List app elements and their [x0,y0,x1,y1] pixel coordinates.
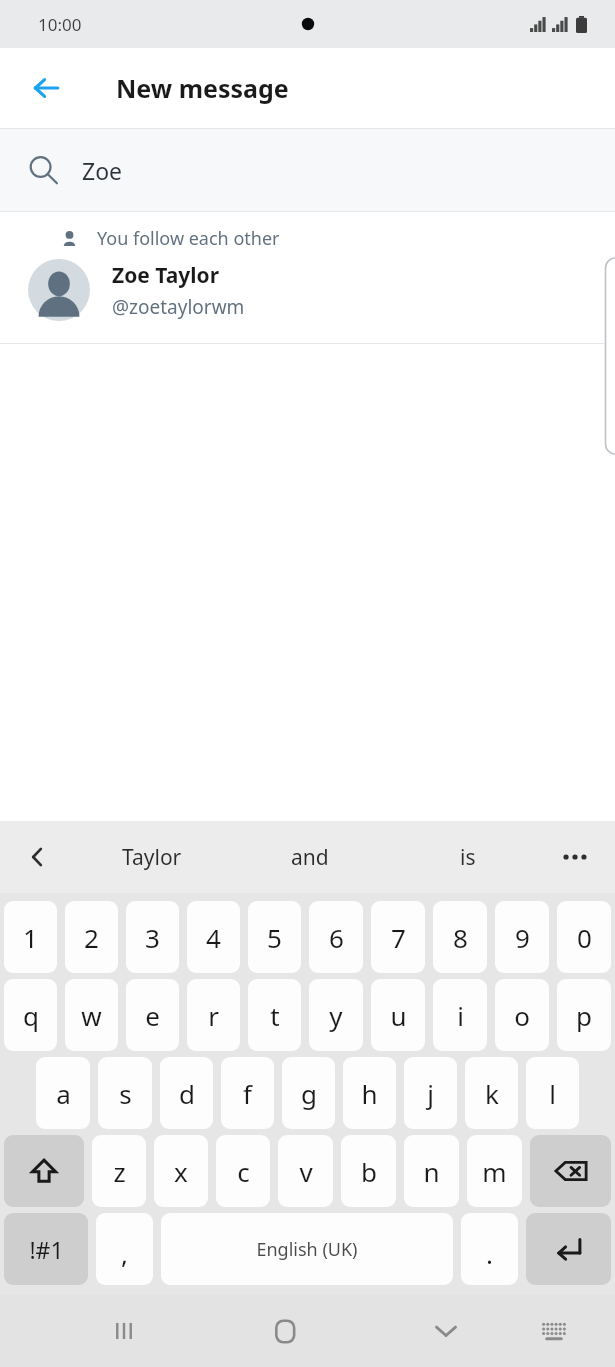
button[interactable]: 6 [309,901,363,973]
button[interactable]: a [36,1057,90,1129]
button[interactable]: 0 [557,901,611,973]
staticText: 7 [391,920,406,955]
staticText: New message [116,71,289,105]
staticText: . [486,1236,493,1271]
staticText: l [549,1076,556,1111]
staticText: z [113,1154,126,1189]
button[interactable]: g [282,1057,335,1129]
button[interactable]: 4 [187,901,240,973]
button[interactable]: i [433,979,487,1051]
staticText: s [119,1076,132,1111]
staticText: y [329,998,343,1033]
button[interactable]: English (UK) [161,1213,453,1285]
button[interactable]: t [248,979,301,1051]
staticText: is [460,843,476,872]
button[interactable]: c [216,1135,270,1207]
staticText: p [576,998,592,1033]
staticText: g [301,1076,317,1111]
button[interactable]: Taylor [72,821,231,893]
staticText: 10:00 [38,13,82,36]
button[interactable]: and [231,821,389,893]
button[interactable]: x [154,1135,208,1207]
button[interactable]: More options [551,833,599,881]
button[interactable]: !#1 [4,1213,88,1285]
button[interactable]: u [371,979,425,1051]
staticText: 6 [329,920,344,955]
button[interactable]: 1 [4,901,57,973]
staticText: u [390,998,407,1033]
staticText: Zoe [82,155,123,186]
button[interactable]: Hide keyboard [418,1303,474,1359]
staticText: b [361,1154,377,1189]
button[interactable]: z [92,1135,146,1207]
staticText: j [427,1076,434,1111]
button[interactable]: 7 [371,901,425,973]
staticText: 2 [84,920,99,955]
staticText: h [361,1076,378,1111]
button[interactable]: w [65,979,118,1051]
button[interactable]: e [126,979,179,1051]
button[interactable]: 3 [126,901,179,973]
button[interactable]: 2 [65,901,118,973]
staticText: 3 [145,920,160,955]
button[interactable]: Recent apps [96,1303,152,1359]
button[interactable]: Change keyboard [526,1303,582,1359]
button[interactable]: y [309,979,363,1051]
staticText: 9 [515,920,530,955]
button[interactable]: v [278,1135,333,1207]
staticText: c [237,1154,250,1189]
staticText: x [174,1154,188,1189]
staticText: Zoe Taylor [112,261,220,290]
staticText: 1 [23,920,38,955]
staticText: v [299,1154,313,1189]
button[interactable]: l [526,1057,579,1129]
staticText: !#1 [29,1234,64,1265]
button[interactable]: . [461,1213,518,1285]
staticText: 8 [453,920,468,955]
staticText: You follow each other [97,226,280,251]
staticText: n [423,1154,440,1189]
button[interactable]: Back [20,62,72,114]
button[interactable]: , [96,1213,153,1285]
staticText: 0 [577,920,592,955]
button[interactable]: d [160,1057,213,1129]
staticText: q [23,998,39,1033]
staticText: o [514,998,530,1033]
staticText: @zoetaylorwm [112,294,245,320]
button[interactable]: Home [257,1303,313,1359]
staticText: a [56,1076,71,1111]
button[interactable]: Zoe [0,129,615,211]
staticText: d [179,1076,195,1111]
button[interactable]: r [187,979,240,1051]
button[interactable]: Enter [526,1213,611,1285]
staticText: m [482,1154,507,1189]
staticText: 4 [206,920,221,955]
button[interactable]: p [557,979,611,1051]
button[interactable]: j [404,1057,457,1129]
staticText: Taylor [122,843,182,872]
button[interactable]: n [404,1135,459,1207]
button[interactable]: is [389,821,547,893]
staticText: r [208,998,219,1033]
button[interactable]: b [341,1135,396,1207]
button[interactable]: s [98,1057,152,1129]
button[interactable]: f [221,1057,274,1129]
staticText: and [291,843,329,872]
staticText: e [145,998,160,1033]
staticText: English (UK) [256,1237,358,1262]
button[interactable]: o [495,979,549,1051]
button[interactable]: 9 [495,901,549,973]
button[interactable]: 5 [248,901,301,973]
button[interactable]: q [4,979,57,1051]
button[interactable]: k [465,1057,518,1129]
button[interactable]: Backspace [530,1135,611,1207]
button[interactable]: Previous suggestions [14,833,62,881]
button[interactable]: Shift [4,1135,84,1207]
button[interactable]: You follow each other [0,212,615,343]
button[interactable]: h [343,1057,396,1129]
button[interactable]: m [467,1135,522,1207]
staticText: t [270,998,280,1033]
staticText: f [243,1076,252,1111]
button[interactable]: 8 [433,901,487,973]
staticText: k [485,1076,499,1111]
